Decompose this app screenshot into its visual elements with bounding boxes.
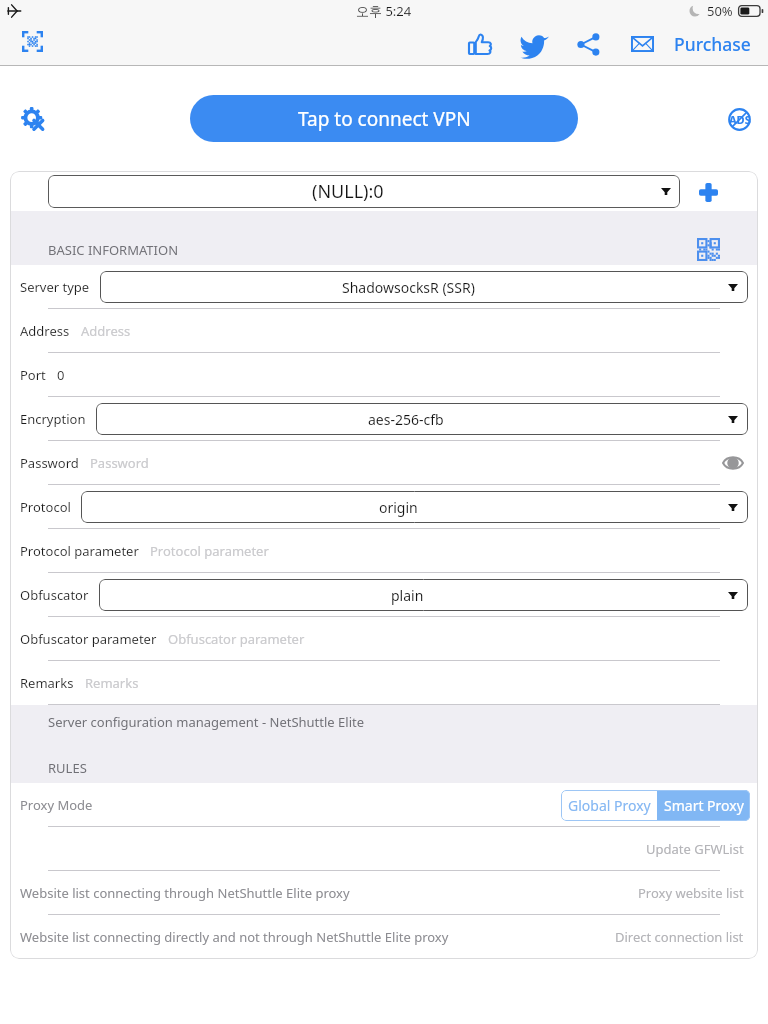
button[interactable]: Settings (13, 99, 53, 139)
staticText: Smart Proxy (664, 796, 744, 815)
staticText: Server type (20, 278, 90, 296)
staticText: RULES (48, 759, 87, 777)
button[interactable]: Address (10, 309, 758, 353)
staticText: aes-256-cfb (368, 410, 444, 429)
button[interactable]: Global Proxy (561, 790, 657, 821)
staticText: 오후 5:24 (356, 2, 412, 20)
staticText: Password (20, 454, 79, 472)
button[interactable]: Encryption (10, 397, 758, 441)
staticText: BASIC INFORMATION (48, 241, 179, 259)
button[interactable]: Protocol (10, 485, 758, 529)
staticText: Website list connecting through NetShutt… (20, 884, 350, 902)
button[interactable]: Scan QR code (11, 20, 53, 62)
staticText: Protocol parameter (150, 542, 269, 560)
button[interactable]: Twitter (515, 25, 553, 63)
staticText: Obfuscator (20, 586, 89, 604)
button[interactable]: (NULL):0 (48, 175, 680, 208)
button[interactable]: Smart Proxy (657, 790, 750, 821)
staticText: (NULL):0 (312, 179, 384, 204)
staticText: Direct connection list (615, 928, 744, 946)
button[interactable]: Website list connecting directly and not… (10, 915, 758, 959)
staticText: Protocol (20, 498, 71, 516)
staticText: Remarks (20, 674, 74, 692)
staticText: Website list connecting directly and not… (20, 928, 449, 946)
button[interactable]: Add server (690, 174, 726, 210)
staticText: Update GFWList (646, 840, 744, 858)
staticText: Protocol parameter (20, 542, 139, 560)
staticText: origin (379, 498, 418, 517)
button[interactable]: Remove ads (721, 101, 757, 137)
staticText: 0 (57, 366, 65, 384)
staticText: Proxy Mode (20, 796, 93, 814)
staticText: Purchase (674, 32, 751, 56)
staticText: Password (90, 454, 149, 472)
button[interactable]: Protocol parameter (10, 529, 758, 573)
staticText: Remarks (85, 674, 139, 692)
staticText: Global Proxy (568, 796, 651, 815)
staticText: ShadowsocksR (SSR) (342, 278, 475, 297)
staticText: Encryption (20, 410, 86, 428)
staticText: 50% (707, 2, 733, 20)
button[interactable]: Like (461, 25, 499, 63)
button[interactable]: Obfuscator (10, 573, 758, 617)
staticText: Address (20, 322, 70, 340)
button[interactable]: Password (10, 441, 758, 485)
staticText: Address (81, 322, 131, 340)
staticText: plain (391, 586, 424, 605)
button[interactable]: Purchase (674, 22, 751, 66)
button[interactable]: Server type (10, 265, 758, 309)
button[interactable]: Share (569, 25, 607, 63)
button[interactable]: Port (10, 353, 758, 397)
button[interactable]: Show QR code (692, 233, 724, 265)
staticText: Server configuration management - NetShu… (48, 713, 365, 731)
staticText: Tap to connect VPN (298, 106, 471, 132)
button[interactable]: Update GFWList (10, 827, 758, 871)
button[interactable]: Email (623, 25, 661, 63)
button[interactable]: Remarks (10, 661, 758, 705)
staticText: ADS (729, 112, 751, 127)
button[interactable]: Tap to connect VPN (190, 95, 578, 142)
staticText: Obfuscator parameter (168, 630, 305, 648)
staticText: Obfuscator parameter (20, 630, 157, 648)
staticText: Proxy website list (638, 884, 744, 902)
button[interactable]: Website list connecting through NetShutt… (10, 871, 758, 915)
staticText: Port (20, 366, 46, 384)
button[interactable]: Obfuscator parameter (10, 617, 758, 661)
